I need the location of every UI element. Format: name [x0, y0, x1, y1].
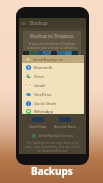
staticText: This backup can be sent directly by mail…	[23, 141, 82, 153]
staticText: Backups	[31, 164, 73, 178]
staticText: OneDrive	[34, 92, 52, 97]
button[interactable]: WhatsApp	[22, 108, 84, 114]
staticText: Send/Backup to...	[33, 57, 66, 62]
staticText: Gmail	[34, 83, 45, 88]
button[interactable]: OneDrive	[22, 90, 84, 99]
staticText: Bluetooth	[34, 65, 53, 70]
staticText: Send Data	[29, 124, 47, 129]
button[interactable]: Receive Data	[54, 117, 76, 129]
staticText: Drive	[34, 74, 44, 79]
staticText: WhatsApp	[34, 109, 54, 114]
staticText: Backup	[30, 20, 48, 27]
button[interactable]: Bluetooth	[22, 63, 84, 72]
staticText: Backup to Dropbox	[30, 33, 74, 39]
staticText: If you do not have a Dropbox account, yo…	[26, 41, 78, 53]
staticText: Quick Share	[34, 101, 57, 106]
button[interactable]: Gmail	[22, 81, 84, 90]
staticText: Receive Data	[54, 124, 76, 129]
button[interactable]: Send Data	[29, 117, 47, 129]
staticText: Send Nearby Devices	[38, 133, 74, 138]
button[interactable]: Quick Share	[22, 99, 84, 108]
button[interactable]: Menu	[21, 21, 26, 26]
button[interactable]: Drive	[22, 72, 84, 81]
